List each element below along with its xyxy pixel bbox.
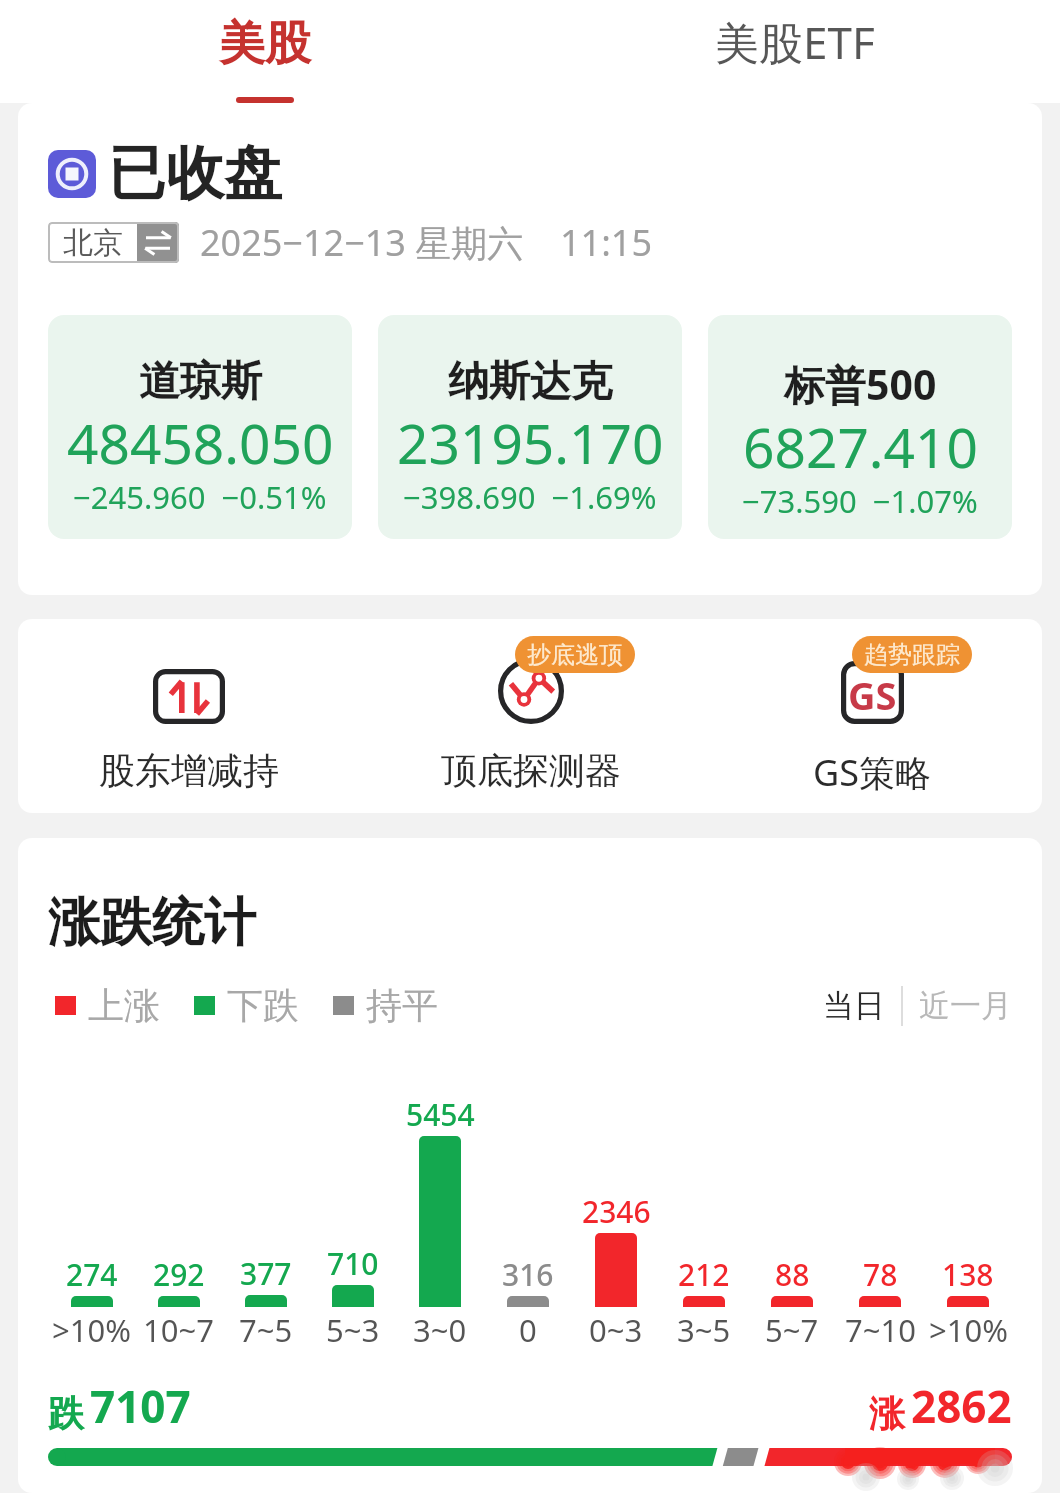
staticText: −73.590 −1.07% [742, 480, 978, 522]
staticText: GS [848, 669, 897, 721]
button[interactable]: 美股ETF [530, 0, 1060, 103]
staticText: 23195.170 [397, 405, 664, 480]
staticText: 10~7 [143, 1309, 214, 1351]
staticText: GS策略 [813, 748, 931, 797]
button[interactable]: 抄底逃顶 [360, 654, 701, 793]
staticText: 持平 [366, 983, 438, 1028]
staticText: 5454 [406, 1094, 475, 1135]
staticText: 7~5 [239, 1309, 293, 1351]
staticText: 7107 [90, 1376, 191, 1436]
staticText: 88 [775, 1254, 810, 1295]
staticText: −245.960 −0.51% [73, 476, 327, 518]
button[interactable]: GS [701, 654, 1042, 797]
staticText: 美股 [219, 15, 311, 73]
staticText: 3~5 [677, 1309, 731, 1351]
staticText: 股东增减持 [99, 748, 279, 793]
staticText: 近一月 [919, 986, 1012, 1025]
staticText: 下跌 [227, 983, 299, 1028]
staticText: 3~0 [413, 1309, 467, 1351]
button[interactable]: 道琼斯 [48, 315, 352, 539]
staticText: 316 [502, 1254, 554, 1295]
staticText: 美股ETF [715, 12, 875, 72]
button[interactable]: 标普500 [708, 315, 1012, 539]
button[interactable]: 美股 [0, 0, 530, 103]
staticText: 138 [942, 1254, 994, 1295]
button[interactable]: 北京 [48, 222, 179, 263]
staticText: 北京 [63, 224, 123, 262]
staticText: 2862 [911, 1376, 1012, 1436]
staticText: 涨 [869, 1391, 905, 1436]
staticText: 48458.050 [67, 405, 334, 480]
staticText: 抄底逃顶 [527, 640, 623, 670]
staticText: >10% [52, 1309, 131, 1351]
staticText: 78 [863, 1254, 898, 1295]
staticText: 当日 [823, 986, 885, 1025]
staticText: 377 [240, 1253, 292, 1294]
staticText: 292 [153, 1254, 205, 1295]
staticText: 道琼斯 [139, 356, 262, 408]
staticText: 上涨 [88, 983, 160, 1028]
staticText: 纳斯达克 [448, 356, 612, 408]
staticText: >10% [929, 1309, 1008, 1351]
staticText: 274 [66, 1254, 118, 1295]
staticText: 5~7 [765, 1309, 819, 1351]
staticText: 0~3 [589, 1309, 643, 1351]
staticText: 2025−12−13 星期六 [200, 218, 524, 267]
staticText: 7~10 [845, 1309, 916, 1351]
button[interactable]: 纳斯达克 [378, 315, 682, 539]
staticText: 2346 [582, 1191, 651, 1232]
staticText: 710 [327, 1243, 379, 1284]
staticText: 趋势跟踪 [864, 640, 960, 670]
staticText: 6827.410 [743, 409, 978, 484]
staticText: 已收盘 [108, 137, 282, 210]
staticText: 标普500 [784, 356, 937, 412]
staticText: 0 [519, 1309, 537, 1351]
staticText: 5~3 [326, 1309, 380, 1351]
staticText: 涨跌统计 [48, 890, 256, 956]
staticText: 11:15 [560, 218, 653, 267]
staticText: 跌 [48, 1391, 84, 1436]
button[interactable]: 股东增减持 [18, 654, 360, 793]
staticText: 212 [678, 1254, 730, 1295]
staticText: 顶底探测器 [441, 748, 621, 793]
staticText: −398.690 −1.69% [403, 476, 657, 518]
